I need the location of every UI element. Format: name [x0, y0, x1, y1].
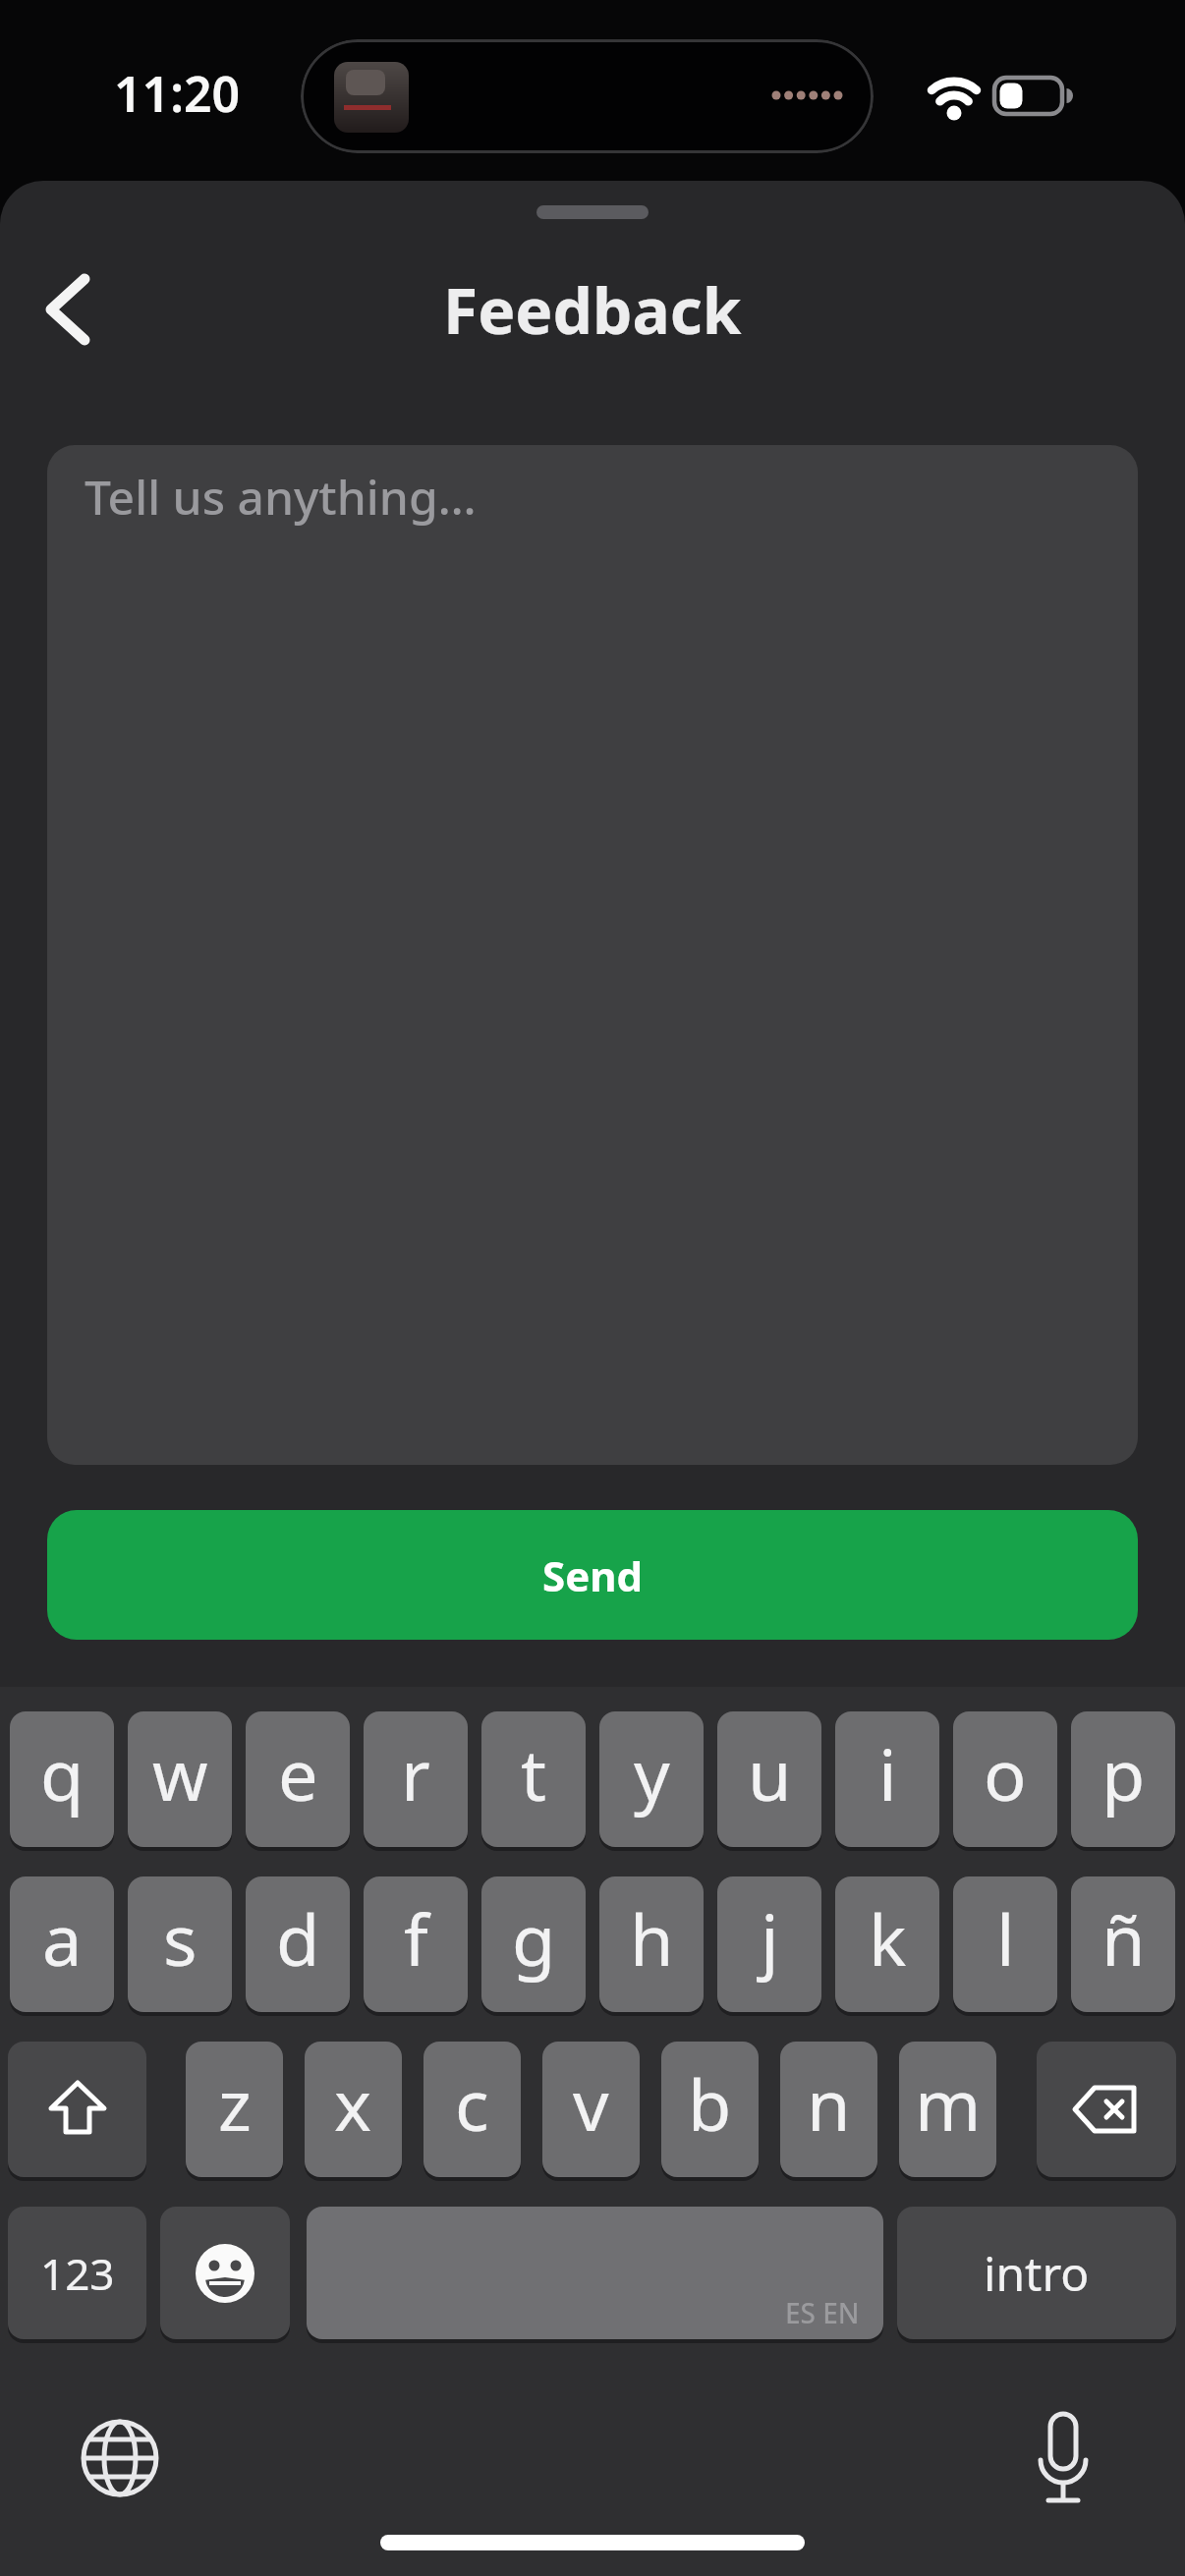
button[interactable]: Send	[47, 1510, 1138, 1640]
staticText: z	[218, 2055, 252, 2152]
button[interactable]: t	[481, 1711, 586, 1847]
button[interactable]: f	[364, 1876, 468, 2012]
staticText: Feedback	[443, 267, 742, 353]
button[interactable]: y	[599, 1711, 704, 1847]
staticText: c	[455, 2055, 489, 2152]
button[interactable]: u	[717, 1711, 821, 1847]
staticText: intro	[984, 2241, 1090, 2305]
button[interactable]	[1012, 2402, 1114, 2515]
staticText: o	[984, 1725, 1027, 1821]
staticText: d	[276, 1890, 320, 1987]
button[interactable]	[20, 265, 118, 359]
button[interactable]: m	[899, 2042, 996, 2177]
button[interactable]	[8, 2042, 146, 2177]
staticText: b	[688, 2055, 732, 2152]
staticText: f	[404, 1890, 428, 1987]
button[interactable]: v	[542, 2042, 640, 2177]
button[interactable]: w	[128, 1711, 232, 1847]
button[interactable]: z	[186, 2042, 283, 2177]
staticText: ES EN	[785, 2294, 860, 2331]
button[interactable]: l	[953, 1876, 1057, 2012]
staticText: v	[573, 2055, 609, 2152]
staticText: x	[334, 2055, 372, 2152]
staticText: t	[521, 1725, 546, 1821]
button[interactable]: d	[246, 1876, 350, 2012]
staticText: p	[1101, 1725, 1146, 1821]
button[interactable]: ñ	[1071, 1876, 1175, 2012]
button[interactable]: r	[364, 1711, 468, 1847]
button[interactable]: s	[128, 1876, 232, 2012]
staticText: n	[807, 2055, 851, 2152]
staticText: q	[40, 1725, 85, 1821]
staticText: e	[278, 1725, 318, 1821]
button[interactable]: i	[835, 1711, 939, 1847]
button[interactable]: h	[599, 1876, 704, 2012]
button[interactable]	[160, 2207, 290, 2339]
staticText: m	[915, 2055, 982, 2152]
button[interactable]: intro	[897, 2207, 1176, 2339]
staticText: a	[42, 1890, 83, 1987]
button[interactable]: j	[717, 1876, 821, 2012]
staticText: l	[996, 1890, 1015, 1987]
button[interactable]: a	[10, 1876, 114, 2012]
staticText: k	[869, 1890, 907, 1987]
button[interactable]: n	[780, 2042, 877, 2177]
staticText: w	[152, 1725, 208, 1821]
button[interactable]: x	[305, 2042, 402, 2177]
staticText: y	[634, 1725, 670, 1821]
staticText: r	[401, 1725, 430, 1821]
button[interactable]: Tell us anything…	[47, 445, 1138, 1465]
button[interactable]: k	[835, 1876, 939, 2012]
button[interactable]: e	[246, 1711, 350, 1847]
button[interactable]: ES EN	[307, 2207, 883, 2339]
button[interactable]: c	[423, 2042, 521, 2177]
staticText: Send	[542, 1547, 644, 1603]
button[interactable]: o	[953, 1711, 1057, 1847]
button[interactable]: p	[1071, 1711, 1175, 1847]
staticText: 11:20	[114, 60, 241, 127]
button[interactable]	[69, 2407, 171, 2509]
staticText: u	[748, 1725, 792, 1821]
button[interactable]: b	[661, 2042, 759, 2177]
button[interactable]: 123	[8, 2207, 146, 2339]
staticText: j	[761, 1890, 779, 1987]
staticText: h	[630, 1890, 674, 1987]
staticText: Tell us anything…	[85, 465, 477, 529]
staticText: 123	[40, 2244, 115, 2303]
staticText: i	[878, 1725, 897, 1821]
button[interactable]: q	[10, 1711, 114, 1847]
staticText: ñ	[1101, 1890, 1146, 1987]
button[interactable]: g	[481, 1876, 586, 2012]
button[interactable]	[1037, 2042, 1176, 2177]
staticText: s	[163, 1890, 197, 1987]
staticText: g	[512, 1890, 556, 1987]
